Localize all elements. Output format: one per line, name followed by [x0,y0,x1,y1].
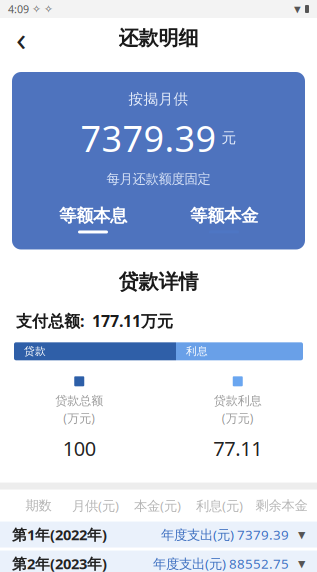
staticText: 还款明细 [118,26,198,50]
staticText: 本金(元) [134,497,181,514]
staticText: 利息 [186,345,208,358]
button[interactable]: Back [0,18,42,58]
staticText: (万元) [63,410,95,426]
staticText: 每月还款额度固定 [106,171,210,187]
staticText: 元 [221,129,236,147]
staticText: ▾ [298,555,305,572]
staticText: 100 [63,435,96,462]
staticText: 贷款利息 [214,393,262,408]
staticText: 贷款总额 [55,393,103,408]
staticText: ▾ [294,1,301,16]
staticText: ▾ [298,526,305,543]
staticText: 等额本息 [59,205,127,226]
staticText: 7379.39 [237,526,289,543]
staticText: ✧ ✧ [29,3,53,15]
button[interactable]: 第2年(2023年) [0,550,317,572]
staticText: 年度支出(元) [161,526,237,543]
staticText: 按揭月供 [128,90,188,108]
staticText: 7379.39 [80,114,216,162]
staticText: 支付总额: 177.11万元 [16,310,173,331]
staticText: 77.11 [213,435,262,462]
staticText: 年度支出(元) [153,555,229,572]
staticText: 4:09 [8,2,29,16]
staticText: 月供(元) [72,497,119,514]
staticText: ‹ [16,16,26,60]
staticText: 贷款 [24,345,46,358]
staticText: 利息(元) [196,497,243,514]
staticText: (万元) [222,410,254,426]
staticText: 剩余本金 [255,497,307,514]
staticText: 第1年(2022年) [12,525,107,544]
staticText: 等额本金 [190,205,258,226]
button[interactable]: 等额本息 [43,205,143,233]
staticText: 贷款详情 [118,269,198,294]
staticText: 88552.75 [229,555,289,572]
staticText: 第2年(2023年) [12,554,107,572]
button[interactable]: 等额本金 [174,205,274,233]
button[interactable]: 第1年(2022年) [0,521,317,547]
staticText: 期数 [25,497,51,514]
